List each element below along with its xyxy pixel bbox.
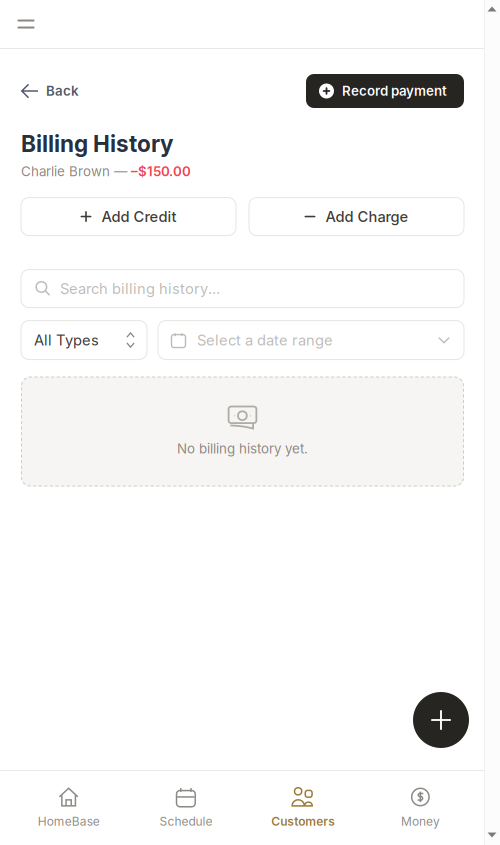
staticText: Add Credit [101,208,176,225]
staticText: Charlie Brown — [21,163,131,179]
staticText: Add Charge [325,208,408,225]
button[interactable]: Schedule [127,771,244,845]
staticText: HomeBase [38,814,100,828]
staticText: Schedule [159,814,212,828]
button[interactable]: All Types [21,321,147,360]
staticText: Search billing history... [60,280,220,297]
button[interactable]: Add [413,692,469,748]
button[interactable]: Add Charge [249,198,464,236]
button[interactable]: Back [21,74,79,108]
staticText: All Types [34,331,99,349]
staticText: Billing History [21,130,173,157]
button[interactable]: Record payment [306,74,464,108]
button[interactable]: Add Credit [21,198,236,236]
staticText: No billing history yet. [177,440,308,457]
button[interactable]: Menu [11,9,41,39]
button[interactable]: Customers [244,771,362,845]
button[interactable]: Money [362,771,479,845]
staticText: Record payment [342,83,447,99]
button[interactable]: Select a date range [158,321,464,360]
button[interactable]: HomeBase [10,771,127,845]
staticText: Money [401,814,440,828]
staticText: Select a date range [197,331,333,349]
staticText: –$150.00 [131,163,191,179]
staticText: Back [46,83,79,99]
staticText: Customers [271,814,335,828]
